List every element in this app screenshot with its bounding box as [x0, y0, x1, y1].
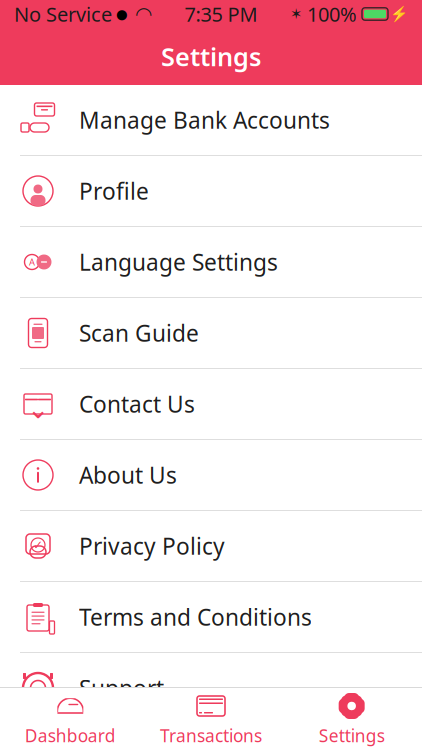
- button[interactable]: Terms and Conditions: [0, 582, 422, 653]
- button[interactable]: Transactions: [141, 685, 281, 750]
- staticText: ⌄: [27, 394, 49, 424]
- button[interactable]: Profile: [0, 156, 422, 227]
- staticText: 7:35 PM: [184, 1, 257, 27]
- staticText: Settings: [319, 724, 385, 747]
- button[interactable]: Support: [0, 653, 422, 724]
- button[interactable]: About Us: [0, 440, 422, 511]
- staticText: ✓: [33, 538, 43, 552]
- staticText: About Us: [79, 460, 177, 490]
- button[interactable]: Manage Bank Accounts: [0, 85, 422, 156]
- staticText: Manage Bank Accounts: [79, 105, 330, 135]
- button[interactable]: Settings: [281, 685, 422, 750]
- button[interactable]: ⌄: [0, 369, 422, 440]
- button[interactable]: Dashboard: [0, 685, 141, 750]
- staticText: ⚡: [390, 6, 408, 22]
- staticText: Profile: [79, 176, 149, 206]
- button[interactable]: ✓: [0, 511, 422, 582]
- staticText: Dashboard: [25, 724, 116, 747]
- staticText: Privacy Policy: [79, 531, 225, 561]
- staticText: Transactions: [160, 724, 262, 747]
- staticText: ●: [112, 6, 128, 21]
- button[interactable]: A: [0, 227, 422, 298]
- staticText: 100%: [307, 1, 357, 27]
- staticText: Settings: [161, 40, 261, 73]
- staticText: ◠: [135, 3, 152, 25]
- staticText: Scan Guide: [79, 318, 199, 348]
- staticText: Terms and Conditions: [79, 602, 312, 632]
- staticText: No Service: [14, 1, 112, 27]
- staticText: Support: [79, 673, 164, 703]
- staticText: ✶: [290, 6, 302, 22]
- staticText: Contact Us: [79, 389, 195, 419]
- button[interactable]: Scan Guide: [0, 298, 422, 369]
- staticText: Language Settings: [79, 247, 278, 277]
- staticText: A: [29, 256, 35, 268]
